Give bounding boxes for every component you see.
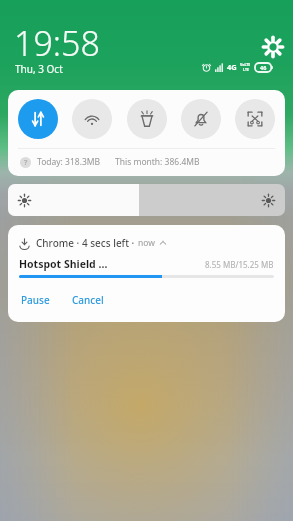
button[interactable]: Screenshot [235,99,275,139]
button[interactable]: Flashlight [127,99,167,139]
staticText: This month: 386.4MB [115,156,200,168]
staticText: Hotspot Shield Free V....apk [19,257,112,271]
button[interactable]: Pause [19,291,52,309]
button[interactable]: Cancel [70,291,106,309]
button[interactable]: Wi-Fi [72,99,112,139]
staticText: 46 [260,64,267,71]
staticText: Cancel [72,293,104,307]
staticText: Pause [21,293,50,307]
button[interactable]: Mobile data [18,99,58,139]
button[interactable]: Settings [262,36,284,58]
staticText: ? [24,158,28,168]
staticText: 8.55 MB/15.25 MB [205,259,274,270]
button[interactable]: Brightness [8,184,285,216]
staticText: 19:58 [14,20,100,66]
staticText: Chrome · 4 secs left · [36,236,135,250]
button[interactable]: Chrome · 4 secs left · [8,225,285,322]
staticText: Today: 318.3MB [37,156,101,168]
staticText: now [138,237,155,249]
staticText: VoLTE [240,62,251,67]
staticText: 4G [227,62,237,72]
staticText: LTE [243,67,249,72]
staticText: Thu, 3 Oct [15,62,63,76]
button[interactable]: Silent [181,99,221,139]
